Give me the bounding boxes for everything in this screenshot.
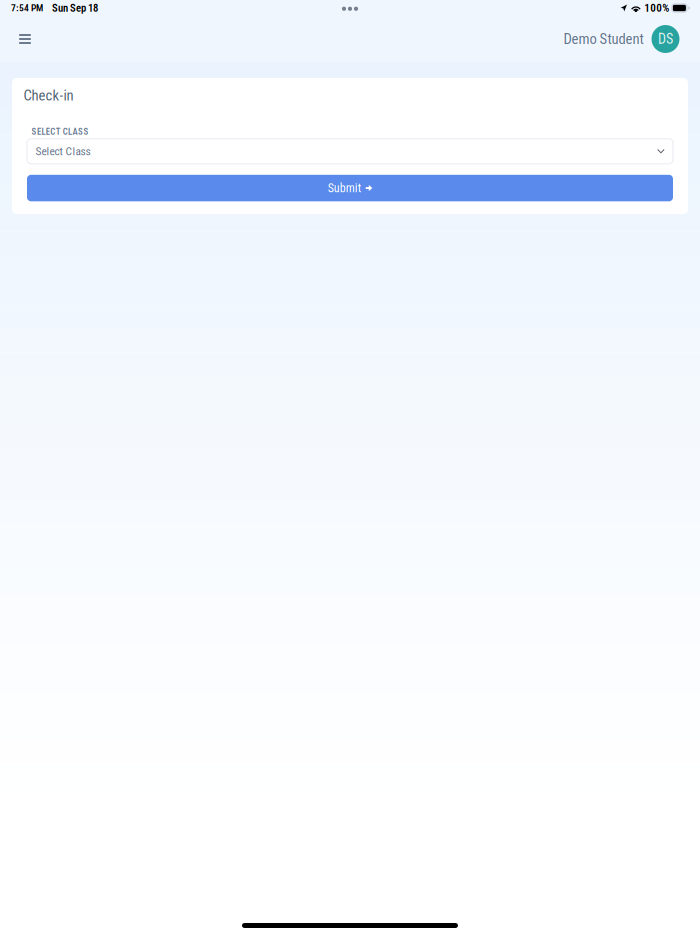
staticText: DS: [658, 31, 673, 47]
staticText: 7:54 PM: [11, 2, 43, 14]
button[interactable]: Menu: [12, 26, 38, 52]
button[interactable]: Demo Student: [563, 25, 679, 53]
staticText: SELECT CLASS: [31, 126, 88, 137]
staticText: Sun Sep 18: [52, 2, 98, 14]
staticText: Select Class: [35, 145, 90, 158]
staticText: Check-in: [23, 87, 73, 104]
staticText: Demo Student: [563, 30, 643, 48]
staticText: 100%: [644, 1, 669, 14]
staticText: Submit: [328, 181, 362, 195]
button[interactable]: Submit: [27, 175, 673, 201]
button[interactable]: Select Class: [27, 139, 673, 164]
